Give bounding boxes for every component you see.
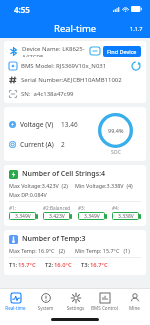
staticText: 4:55 (14, 4, 30, 15)
staticText: Min Voltage:3.338V (4) (75, 182, 141, 189)
staticText: SN: a4c138a47c99 (21, 90, 74, 98)
staticText: 3.349V (15, 213, 31, 220)
staticText: #2:Balanced (43, 205, 71, 211)
staticText: Find Device (107, 48, 137, 55)
staticText: #3: (78, 205, 85, 211)
staticText: Min Temp: 15.7°C (1) (75, 247, 141, 254)
button[interactable]: Real-time (1, 289, 30, 314)
button[interactable]: Mine (120, 289, 149, 314)
staticText: Mine (120, 305, 149, 311)
staticText: Serial Number:AEJCBH10AMB11002 (21, 76, 122, 84)
staticText: 15.7°C (18, 261, 36, 269)
staticText: #4: (112, 205, 119, 211)
button[interactable]: Settings (61, 289, 90, 314)
staticText: 3.423V (49, 213, 65, 220)
staticText: BMS Model: RJS369V10x_N031 (21, 62, 131, 70)
staticText: Real-time (1, 305, 30, 311)
staticText: SOC (111, 149, 121, 156)
staticText: 16.7°C (90, 261, 108, 269)
staticText: Number of Cell Strings:4 (22, 169, 106, 179)
button[interactable]: BMS Control (90, 289, 119, 314)
staticText: T2: (45, 261, 54, 269)
staticText: T1: (9, 261, 18, 269)
staticText: Number of Temp:3 (22, 234, 86, 244)
staticText: Device Name: LK8625-A47C9E (22, 45, 90, 57)
staticText: BMS Control (90, 305, 119, 311)
staticText: 16.0°C (54, 261, 72, 269)
staticText: T3: (81, 261, 90, 269)
staticText: Max Temp: 16.9°C (2) (9, 247, 75, 254)
staticText: 1.1.7 (130, 25, 143, 32)
staticText: Max Voltage:3.423V (2) (9, 182, 75, 189)
staticText: #1: (9, 205, 16, 211)
staticText: Max DP:0.084V (9, 191, 47, 198)
staticText: System (31, 305, 60, 311)
staticText: Current (A) (20, 140, 61, 149)
staticText: 99.4% (108, 127, 124, 134)
staticText: Voltage (V) (20, 120, 61, 129)
button[interactable]: Bluetooth status (90, 47, 100, 55)
staticText: 3.349V (84, 213, 100, 220)
button[interactable]: System (31, 289, 60, 314)
staticText: 13.46 (61, 120, 78, 129)
staticText: 2 (61, 140, 65, 149)
button[interactable]: Find Device (103, 46, 141, 57)
staticText: Settings (61, 305, 90, 311)
staticText: Real-time (54, 22, 97, 35)
button[interactable]: Refresh (131, 61, 141, 71)
staticText: 3.338V (118, 213, 134, 220)
